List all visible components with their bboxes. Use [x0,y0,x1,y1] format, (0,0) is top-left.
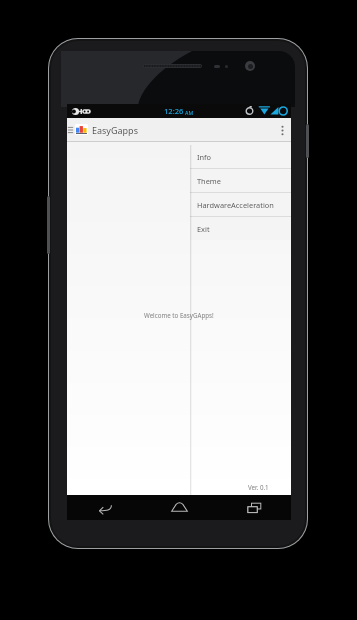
button[interactable]: HardwareAcceleration [190,193,291,216]
button[interactable]: More options [273,119,291,141]
staticText: AM [185,109,194,116]
staticText: 12:26 [164,106,184,116]
staticText: Info [197,152,212,162]
staticText: Welcome to EasyGApps! [144,311,214,319]
button[interactable]: Home [162,495,196,520]
button[interactable]: Info [190,145,291,168]
button[interactable]: Back [87,495,121,520]
button[interactable]: Theme [190,169,291,192]
button[interactable]: Navigate up [67,119,74,141]
staticText: HardwareAcceleration [197,200,274,210]
staticText: EasyGapps [92,124,138,136]
staticText: Theme [197,176,221,186]
staticText: Ver. 0.1 [248,483,269,491]
button[interactable]: Recent apps [237,495,271,520]
button[interactable]: Exit [190,217,291,240]
staticText: Exit [197,224,210,234]
